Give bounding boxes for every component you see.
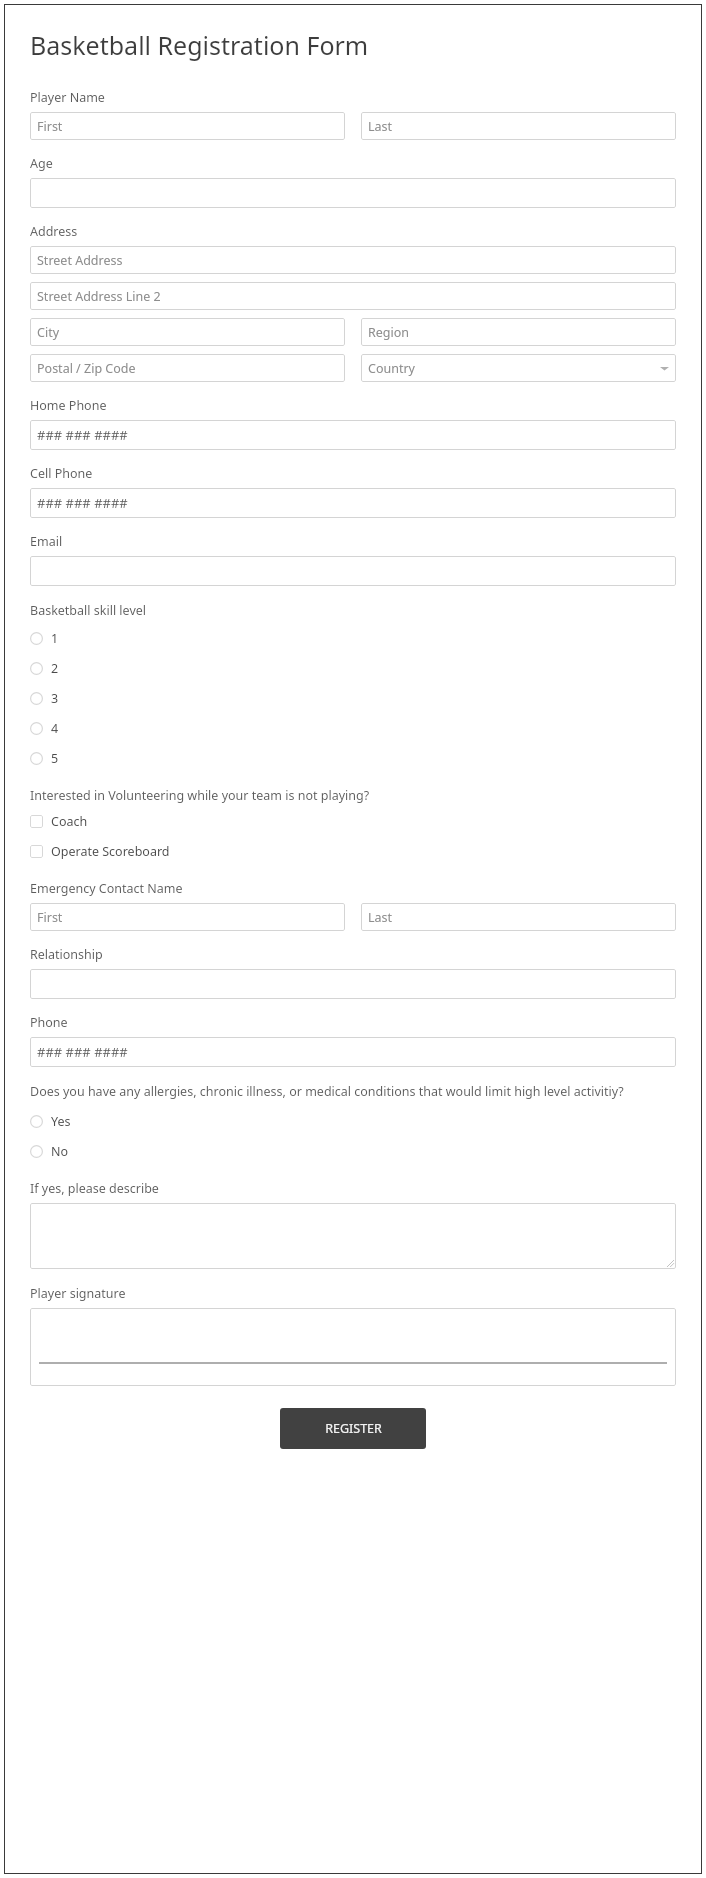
staticText: ### ### ####: [37, 494, 669, 512]
button[interactable]: ### ### ####: [30, 488, 676, 518]
button[interactable]: Last: [361, 112, 676, 140]
button[interactable]: Postal / Zip Code: [30, 354, 345, 382]
button[interactable]: No: [30, 1136, 676, 1166]
staticText: Street Address Line 2: [37, 288, 669, 305]
button[interactable]: First: [30, 903, 345, 931]
staticText: Basketball Registration Form: [30, 28, 369, 62]
button[interactable]: [30, 556, 676, 586]
button[interactable]: Yes: [30, 1106, 676, 1136]
staticText: 2: [51, 660, 59, 677]
button[interactable]: Operate Scoreboard: [30, 836, 676, 866]
staticText: Operate Scoreboard: [51, 843, 170, 860]
button[interactable]: 3: [30, 683, 676, 713]
staticText: First: [37, 909, 338, 926]
button[interactable]: ### ### ####: [30, 420, 676, 450]
staticText: Cell Phone: [30, 465, 93, 482]
staticText: Relationship: [30, 946, 103, 963]
button[interactable]: City: [30, 318, 345, 346]
staticText: Player signature: [30, 1285, 126, 1302]
button[interactable]: Country: [361, 354, 676, 382]
staticText: Home Phone: [30, 397, 107, 414]
button[interactable]: [30, 969, 676, 999]
button[interactable]: Last: [361, 903, 676, 931]
staticText: Address: [30, 223, 78, 240]
button[interactable]: 4: [30, 713, 676, 743]
staticText: Region: [368, 324, 669, 341]
staticText: No: [51, 1143, 69, 1160]
button[interactable]: ### ### ####: [30, 1037, 676, 1067]
button[interactable]: Street Address Line 2: [30, 282, 676, 310]
staticText: 4: [51, 720, 59, 737]
button[interactable]: 1: [30, 623, 676, 653]
button[interactable]: REGISTER: [280, 1408, 426, 1449]
button[interactable]: 5: [30, 743, 676, 773]
staticText: Basketball skill level: [30, 602, 147, 619]
staticText: Last: [368, 118, 669, 135]
staticText: ### ### ####: [37, 1043, 669, 1061]
button[interactable]: Region: [361, 318, 676, 346]
staticText: 1: [51, 630, 59, 647]
staticText: Does you have any allergies, chronic ill…: [30, 1083, 624, 1100]
staticText: Age: [30, 155, 53, 172]
staticText: 3: [51, 690, 59, 707]
button[interactable]: First: [30, 112, 345, 140]
staticText: Yes: [51, 1113, 71, 1130]
button[interactable]: [30, 1308, 676, 1386]
staticText: Interested in Volunteering while your te…: [30, 787, 370, 804]
staticText: Phone: [30, 1014, 68, 1031]
staticText: If yes, please describe: [30, 1180, 159, 1197]
staticText: Country: [368, 360, 660, 377]
staticText: Email: [30, 533, 63, 550]
staticText: Street Address: [37, 252, 669, 269]
staticText: Coach: [51, 813, 88, 830]
staticText: City: [37, 324, 338, 341]
button[interactable]: Coach: [30, 806, 676, 836]
staticText: First: [37, 118, 338, 135]
staticText: Postal / Zip Code: [37, 360, 338, 377]
staticText: 5: [51, 750, 59, 767]
button[interactable]: [30, 178, 676, 208]
staticText: Player Name: [30, 89, 105, 106]
button[interactable]: [30, 1203, 676, 1269]
button[interactable]: 2: [30, 653, 676, 683]
staticText: Emergency Contact Name: [30, 880, 183, 897]
staticText: ### ### ####: [37, 426, 669, 444]
staticText: REGISTER: [325, 1420, 382, 1437]
staticText: Last: [368, 909, 669, 926]
button[interactable]: Street Address: [30, 246, 676, 274]
